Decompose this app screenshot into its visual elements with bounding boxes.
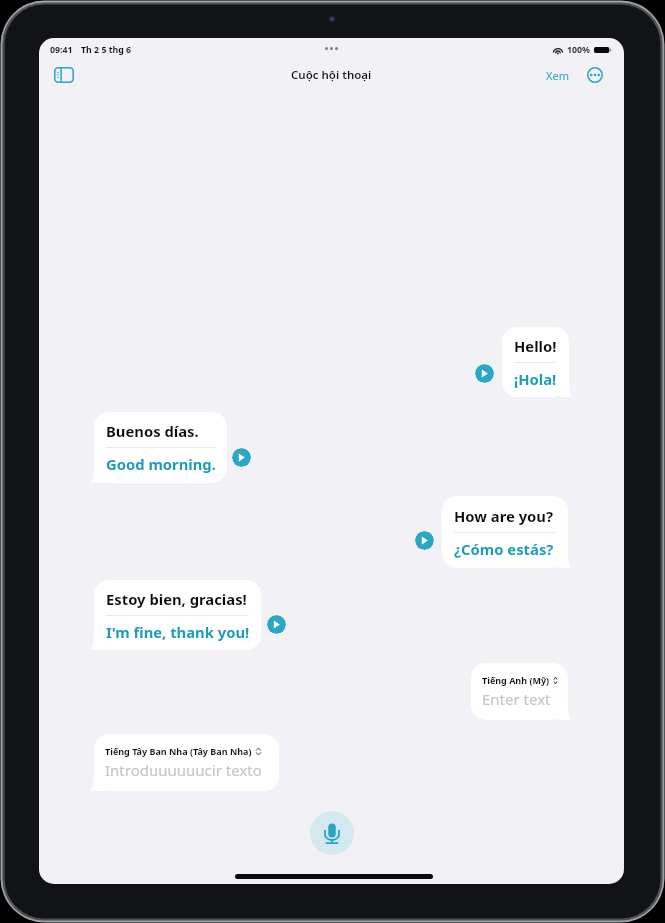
button[interactable]: Estoy bien, gracias! bbox=[94, 580, 261, 650]
button[interactable]: Tiếng Anh (Mỹ) bbox=[471, 663, 568, 720]
staticText: I'm fine, thank you! bbox=[106, 622, 249, 642]
staticText: Tiếng Tây Ban Nha (Tây Ban Nha) bbox=[105, 745, 252, 757]
staticText: Xem bbox=[546, 68, 569, 83]
button[interactable]: Tiếng Tây Ban Nha (Tây Ban Nha) bbox=[94, 734, 279, 791]
button[interactable]: More options bbox=[582, 62, 608, 88]
staticText: Cuộc hội thoại bbox=[291, 67, 372, 83]
staticText: Tiếng Anh (Mỹ) bbox=[482, 674, 550, 686]
staticText: Introduuuuuucir texto bbox=[105, 760, 262, 780]
staticText: Enter text bbox=[482, 689, 551, 709]
button[interactable]: Play audio bbox=[267, 615, 286, 634]
button[interactable]: How are you? bbox=[442, 496, 568, 568]
staticText: Buenos días. bbox=[106, 421, 199, 441]
staticText: Estoy bien, gracias! bbox=[106, 589, 247, 609]
button[interactable]: Show sidebar bbox=[48, 59, 80, 91]
button[interactable]: Play audio bbox=[232, 448, 251, 467]
staticText: How are you? bbox=[454, 506, 554, 526]
button[interactable]: Play audio bbox=[415, 531, 434, 550]
staticText: Th 2 5 thg 6 bbox=[81, 44, 132, 56]
staticText: Hello! bbox=[514, 336, 557, 356]
staticText: 100% bbox=[567, 44, 591, 56]
button[interactable]: Hello! bbox=[502, 327, 569, 397]
button[interactable]: Buenos días. bbox=[94, 412, 227, 483]
staticText: ¡Hola! bbox=[514, 369, 557, 389]
staticText: ¿Cómo estás? bbox=[454, 539, 554, 559]
staticText: Good morning. bbox=[106, 454, 215, 474]
button[interactable]: Play audio bbox=[475, 364, 494, 383]
button[interactable]: Record audio bbox=[310, 811, 354, 855]
staticText: 09:41 bbox=[50, 44, 73, 56]
button[interactable]: Xem bbox=[540, 62, 575, 89]
